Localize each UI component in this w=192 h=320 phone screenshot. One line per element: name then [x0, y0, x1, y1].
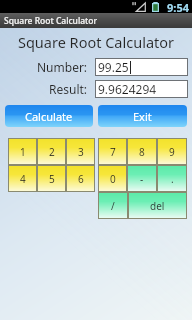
button[interactable]: 8: [127, 138, 157, 165]
staticText: Number:: [37, 59, 88, 75]
staticText: 6: [78, 172, 84, 186]
staticText: 4: [20, 172, 26, 186]
button[interactable]: 9.9624294: [95, 80, 188, 98]
staticText: -: [140, 172, 144, 186]
button[interactable]: 99.25: [95, 58, 188, 76]
staticText: 9: [169, 145, 175, 159]
button[interactable]: del: [128, 192, 187, 219]
button[interactable]: 6: [66, 165, 95, 192]
staticText: 99.25: [98, 59, 129, 75]
staticText: 0: [110, 172, 116, 186]
button[interactable]: Exit: [98, 105, 187, 127]
staticText: 2: [49, 145, 55, 159]
button[interactable]: 0: [98, 165, 127, 192]
staticText: Result:: [49, 81, 88, 97]
staticText: Calculate: [25, 109, 73, 124]
button[interactable]: 7: [98, 138, 127, 165]
staticText: Exit: [133, 109, 152, 124]
staticText: 9:54: [167, 0, 189, 13]
button[interactable]: Calculate: [5, 105, 93, 127]
staticText: del: [150, 199, 165, 213]
button[interactable]: 4: [8, 165, 37, 192]
staticText: Square Root Calculator: [0, 32, 192, 52]
button[interactable]: 2: [37, 138, 66, 165]
button[interactable]: .: [157, 165, 187, 192]
staticText: /: [111, 199, 115, 213]
button[interactable]: 1: [8, 138, 37, 165]
staticText: 7: [110, 145, 116, 159]
staticText: .: [171, 172, 174, 186]
staticText: 3: [78, 145, 84, 159]
staticText: 1: [20, 145, 26, 159]
staticText: 8: [139, 145, 145, 159]
button[interactable]: 5: [37, 165, 66, 192]
staticText: 5: [49, 172, 55, 186]
button[interactable]: 3: [66, 138, 95, 165]
staticText: Square Root Calculator: [4, 15, 98, 27]
staticText: 9.9624294: [98, 81, 157, 97]
button[interactable]: 9: [157, 138, 187, 165]
button[interactable]: /: [98, 192, 128, 219]
button[interactable]: -: [127, 165, 157, 192]
